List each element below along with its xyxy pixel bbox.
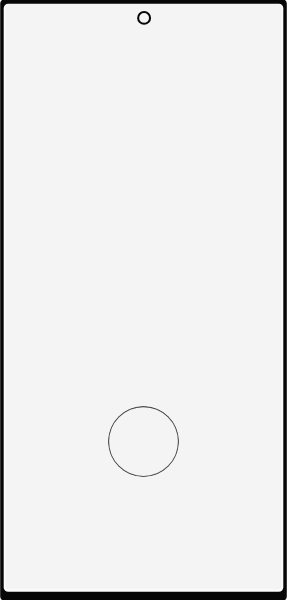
button[interactable]: Action — [108, 406, 179, 477]
other: Front camera — [132, 6, 156, 30]
